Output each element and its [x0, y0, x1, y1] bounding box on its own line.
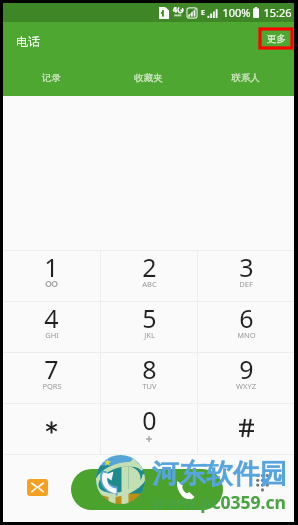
button[interactable]: 2	[101, 251, 197, 301]
staticText: ABC	[142, 279, 157, 289]
button[interactable]: 6	[198, 302, 294, 352]
button[interactable]: 3	[198, 251, 294, 301]
button[interactable]	[3, 404, 100, 454]
staticText: 9	[239, 352, 254, 386]
button[interactable]: Call	[71, 469, 223, 510]
button[interactable]: 8	[101, 353, 197, 403]
staticText: 2	[142, 250, 157, 284]
button[interactable]	[198, 404, 294, 454]
staticText: JKL	[144, 330, 155, 340]
staticText: DEF	[239, 279, 253, 289]
staticText: 15:26	[263, 5, 292, 20]
button[interactable]: 4	[3, 302, 100, 352]
staticText: TUV	[142, 381, 157, 391]
button[interactable]: 1	[3, 251, 100, 301]
staticText: 0	[142, 403, 157, 437]
staticText: 100%	[222, 5, 251, 20]
staticText: 联系人	[231, 72, 260, 84]
staticText: 1	[44, 250, 59, 284]
staticText: 更多	[267, 33, 286, 45]
staticText: WXYZ	[236, 381, 256, 391]
staticText: 7	[44, 352, 59, 386]
staticText: 收藏夹	[134, 72, 163, 84]
staticText: PQRS	[42, 381, 62, 391]
staticText: 河东软件园	[152, 457, 287, 491]
button[interactable]: 7	[3, 353, 100, 403]
staticText: E	[201, 8, 205, 18]
button[interactable]: 5	[101, 302, 197, 352]
button[interactable]: 记录	[3, 60, 100, 96]
button[interactable]: 收藏夹	[100, 60, 197, 96]
staticText: 电话	[16, 34, 40, 49]
staticText: 8	[142, 352, 157, 386]
staticText: GHI	[45, 330, 59, 340]
staticText: 5	[142, 301, 157, 335]
button[interactable]: Keypad	[255, 474, 270, 491]
button[interactable]: 更多	[260, 29, 292, 48]
staticText: 3	[239, 250, 254, 284]
staticText: 记录	[42, 72, 61, 84]
button[interactable]: 0	[101, 404, 197, 454]
button[interactable]: Messages	[27, 479, 48, 496]
staticText: MNO	[237, 330, 256, 340]
staticText: www.pc0359.cn	[151, 490, 286, 514]
button[interactable]: 联系人	[197, 60, 294, 96]
staticText: 4	[44, 301, 59, 335]
staticText: 6	[239, 301, 254, 335]
button[interactable]: 9	[198, 353, 294, 403]
